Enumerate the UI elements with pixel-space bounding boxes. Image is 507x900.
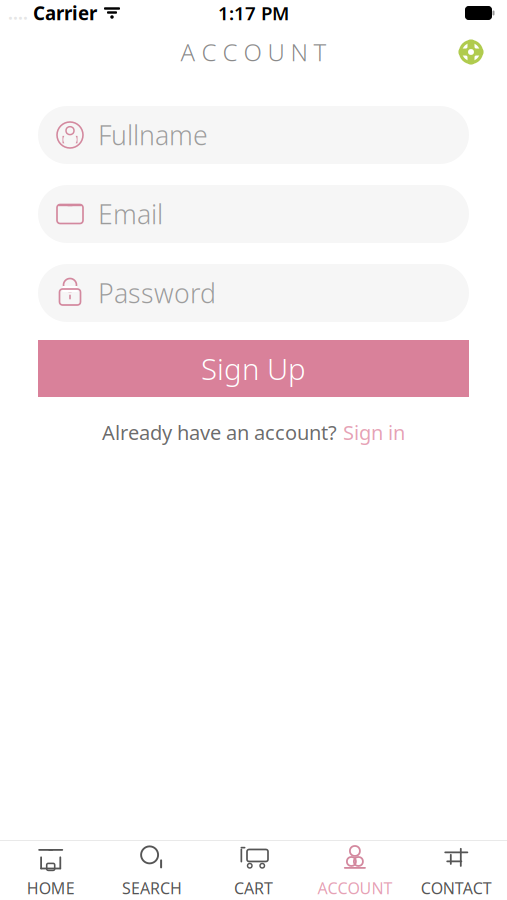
button[interactable]: Already have an account? bbox=[92, 413, 415, 452]
button[interactable]: SEARCH bbox=[101, 834, 203, 900]
button[interactable]: CART bbox=[203, 834, 304, 900]
staticText: HOME bbox=[27, 877, 75, 899]
staticText: .... bbox=[8, 1, 28, 24]
staticText: 1:17 PM bbox=[218, 1, 289, 25]
staticText: CART bbox=[234, 877, 273, 899]
button[interactable]: Email bbox=[38, 185, 469, 243]
button[interactable]: Settings bbox=[451, 32, 491, 72]
staticText: Already have an account? bbox=[102, 419, 337, 446]
staticText: Password bbox=[98, 275, 216, 311]
button[interactable]: Fullname bbox=[38, 106, 469, 164]
staticText: Email bbox=[98, 196, 163, 232]
staticText: Sign in bbox=[343, 419, 405, 446]
staticText: SEARCH bbox=[122, 877, 182, 899]
staticText: A C C O U N T bbox=[180, 36, 326, 68]
button[interactable]: Sign Up bbox=[38, 340, 469, 397]
button[interactable]: HOME bbox=[0, 834, 101, 900]
staticText: Fullname bbox=[98, 117, 208, 153]
staticText: Sign Up bbox=[201, 349, 306, 388]
staticText: CONTACT bbox=[421, 877, 492, 899]
button[interactable]: ACCOUNT bbox=[304, 834, 406, 900]
button[interactable]: Password bbox=[38, 264, 469, 322]
staticText: ACCOUNT bbox=[317, 877, 392, 899]
staticText: Carrier bbox=[28, 1, 97, 25]
button[interactable]: CONTACT bbox=[406, 834, 507, 900]
